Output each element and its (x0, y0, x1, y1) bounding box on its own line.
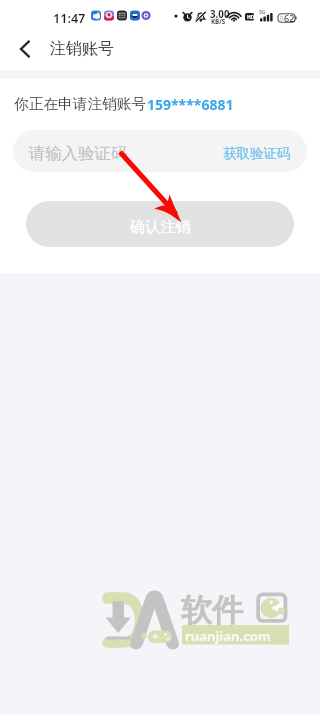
staticText: 3.00 (210, 8, 230, 21)
staticText: 62 (284, 12, 295, 24)
staticText: 确认注销 (130, 217, 191, 236)
staticText: 11:47 (53, 10, 86, 27)
button[interactable]: Back (6, 32, 44, 70)
staticText: 你正在申请注销账号 (14, 95, 147, 114)
staticText: 获取验证码 (223, 145, 291, 162)
staticText: 请输入验证码 (29, 143, 204, 164)
staticText: 5G (259, 9, 266, 16)
button[interactable]: 获取验证码 (204, 131, 307, 172)
staticText: HD (247, 14, 255, 21)
staticText: KB/S (211, 17, 226, 25)
staticText: 159****6881 (147, 95, 234, 114)
staticText: ruanjian.com (185, 627, 271, 645)
staticText: 软件 (181, 591, 243, 630)
button[interactable]: 确认注销 (26, 201, 294, 247)
staticText: 注销账号 (50, 39, 114, 59)
